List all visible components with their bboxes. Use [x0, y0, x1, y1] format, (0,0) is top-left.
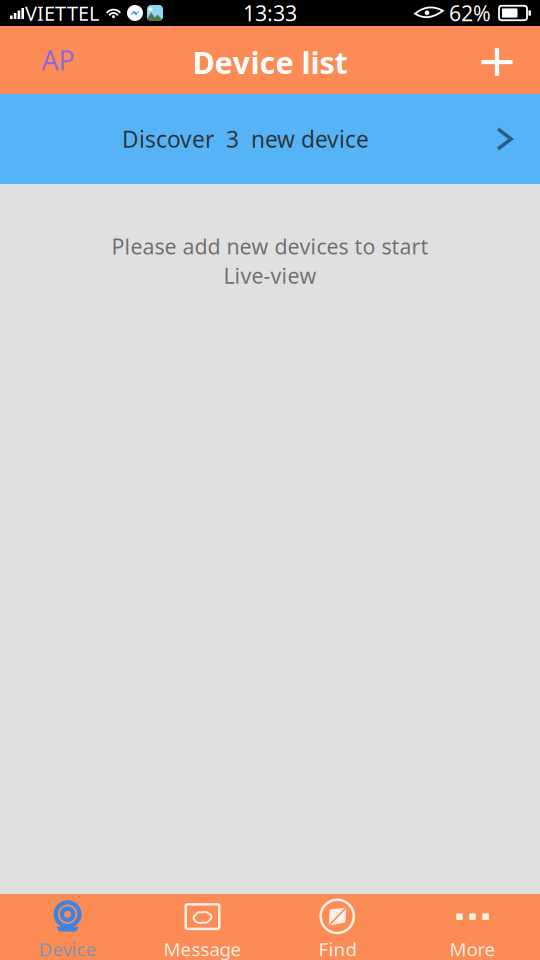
button[interactable]: Message: [135, 894, 270, 960]
staticText: Message: [163, 937, 241, 960]
button[interactable]: Add device: [466, 36, 528, 88]
staticText: Find: [318, 937, 356, 960]
button[interactable]: Device: [0, 894, 135, 960]
button[interactable]: AP: [27, 36, 89, 88]
button[interactable]: More: [405, 894, 540, 960]
staticText: Live-view: [223, 261, 316, 290]
staticText: VIETTEL: [25, 0, 99, 26]
staticText: AP: [41, 42, 74, 78]
staticText: Device: [38, 937, 96, 960]
staticText: 13:33: [243, 0, 297, 27]
staticText: 62%: [449, 0, 491, 27]
button[interactable]: Find: [270, 894, 405, 960]
staticText: Device list: [192, 42, 347, 82]
staticText: More: [449, 937, 495, 960]
staticText: Please add new devices to start: [111, 232, 428, 260]
button[interactable]: Discover 3 new device: [0, 94, 540, 184]
staticText: Discover 3 new device: [122, 124, 369, 154]
